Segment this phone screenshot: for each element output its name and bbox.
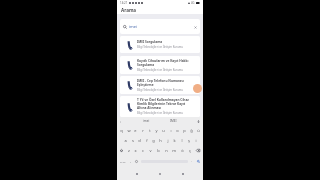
staticText: l (181, 138, 183, 143)
button[interactable]: o (174, 125, 181, 135)
staticText: y (155, 128, 158, 133)
staticText: IMEI - Cep Telefonu Numarası (137, 79, 184, 83)
staticText: Bilgi Teknolojileri ve İletişim Kurumu (137, 111, 183, 115)
staticText: v (149, 148, 152, 153)
button[interactable]: IMEI - Cep Telefonu Numarası (120, 76, 200, 94)
button[interactable]: Backspace (194, 145, 202, 155)
button[interactable]: v (146, 145, 154, 155)
staticText: n (165, 148, 168, 153)
button[interactable]: p (181, 125, 188, 135)
button[interactable]: g (150, 135, 157, 145)
button[interactable]: n (162, 145, 170, 155)
staticText: , (130, 159, 131, 163)
staticText: ı (170, 128, 172, 133)
button[interactable]: ğ (188, 125, 195, 135)
button[interactable]: z (125, 145, 132, 155)
staticText: h (159, 138, 162, 143)
staticText: k (173, 138, 176, 143)
button[interactable]: j (164, 135, 171, 145)
button[interactable]: Search (120, 19, 200, 34)
button[interactable]: ç (186, 145, 194, 155)
staticText: ş (188, 138, 190, 143)
button[interactable]: Profile (193, 84, 202, 93)
staticText: s (132, 138, 134, 143)
button[interactable]: f (143, 135, 150, 145)
staticText: z (128, 148, 130, 153)
staticText: u (162, 128, 165, 133)
staticText: j (167, 138, 169, 143)
button[interactable]: Home (157, 171, 163, 177)
button[interactable]: c (139, 145, 146, 155)
button[interactable]: q (118, 125, 125, 135)
staticText: T Yıl ve Özel Kullanılmayan Cihaz (137, 98, 189, 102)
staticText: c (142, 148, 144, 153)
staticText: Sorgulama (137, 63, 155, 67)
other: Voice input (197, 120, 200, 123)
button[interactable]: m (170, 145, 178, 155)
button[interactable]: Recents (180, 171, 186, 177)
button[interactable]: T Yıl ve Özel Kullanılmayan Cihaz (120, 96, 200, 117)
button[interactable]: ı (167, 125, 174, 135)
button[interactable]: IMEI Sorgulama (120, 36, 200, 53)
staticText: e (134, 128, 137, 133)
button[interactable]: ü (195, 125, 202, 135)
staticText: IMEI Sorgulama (137, 40, 163, 44)
staticText: d (138, 138, 141, 143)
button[interactable]: d (136, 135, 143, 145)
staticText: f (146, 138, 148, 143)
button[interactable]: ö (178, 145, 186, 155)
button[interactable]: ?123 (120, 160, 126, 163)
staticText: ğ (190, 128, 193, 133)
button[interactable]: ş (185, 135, 192, 145)
staticText: m (172, 148, 176, 153)
button[interactable]: t (146, 125, 153, 135)
staticText: ‹ (120, 119, 122, 124)
staticText: q (120, 128, 123, 133)
staticText: a (124, 138, 127, 143)
button[interactable]: w (125, 125, 132, 135)
staticText: r (142, 128, 144, 133)
button[interactable]: k (171, 135, 178, 145)
button[interactable]: a (121, 135, 129, 145)
button[interactable]: i (192, 135, 199, 145)
staticText: Bilgi Teknolojileri ve İletişim Kurumu (137, 88, 183, 92)
button[interactable]: Shift (118, 145, 125, 155)
button[interactable]: Emoji (135, 160, 138, 163)
button[interactable]: Kayıtlı Cihazlarım ve Kayıt Hakkı (120, 56, 200, 74)
button[interactable]: Search (197, 160, 200, 163)
staticText: 4G (191, 1, 195, 5)
staticText: . (191, 159, 192, 163)
staticText: g (152, 138, 155, 143)
staticText: Kimlik Bilgilerinin Tekrar Kayıt (137, 102, 186, 106)
staticText: imei (129, 24, 138, 29)
staticText: t (149, 128, 151, 133)
button[interactable]: y (153, 125, 160, 135)
button[interactable]: r (139, 125, 146, 135)
staticText: ?123 (120, 160, 126, 163)
staticText: imei (143, 119, 150, 123)
button[interactable]: Clear (193, 25, 197, 29)
staticText: Bilgi Teknolojileri ve İletişim Kurumu (137, 68, 183, 72)
staticText: Bilgi Teknolojileri ve İletişim Kurumu (137, 45, 183, 49)
staticText: Kayıtlı Cihazlarım ve Kayıt Hakkı (137, 59, 189, 63)
staticText: Altına Alınması (137, 106, 162, 110)
staticText: Eşleştirme (137, 83, 154, 87)
button[interactable]: s (129, 135, 136, 145)
button[interactable]: h (157, 135, 164, 145)
staticText: 14:21 (120, 1, 128, 5)
button[interactable]: b (154, 145, 162, 155)
button[interactable]: Back (134, 171, 140, 177)
staticText: ö (181, 148, 184, 153)
staticText: o (176, 128, 179, 133)
button[interactable]: e (132, 125, 139, 135)
staticText: ç (189, 148, 191, 153)
button[interactable]: l (178, 135, 185, 145)
button[interactable]: x (132, 145, 139, 155)
staticText: w (127, 128, 131, 133)
staticText: p (183, 128, 186, 133)
staticText: i (195, 138, 197, 143)
staticText: Arama (121, 7, 137, 13)
button[interactable]: u (160, 125, 167, 135)
other: Search (123, 25, 127, 29)
